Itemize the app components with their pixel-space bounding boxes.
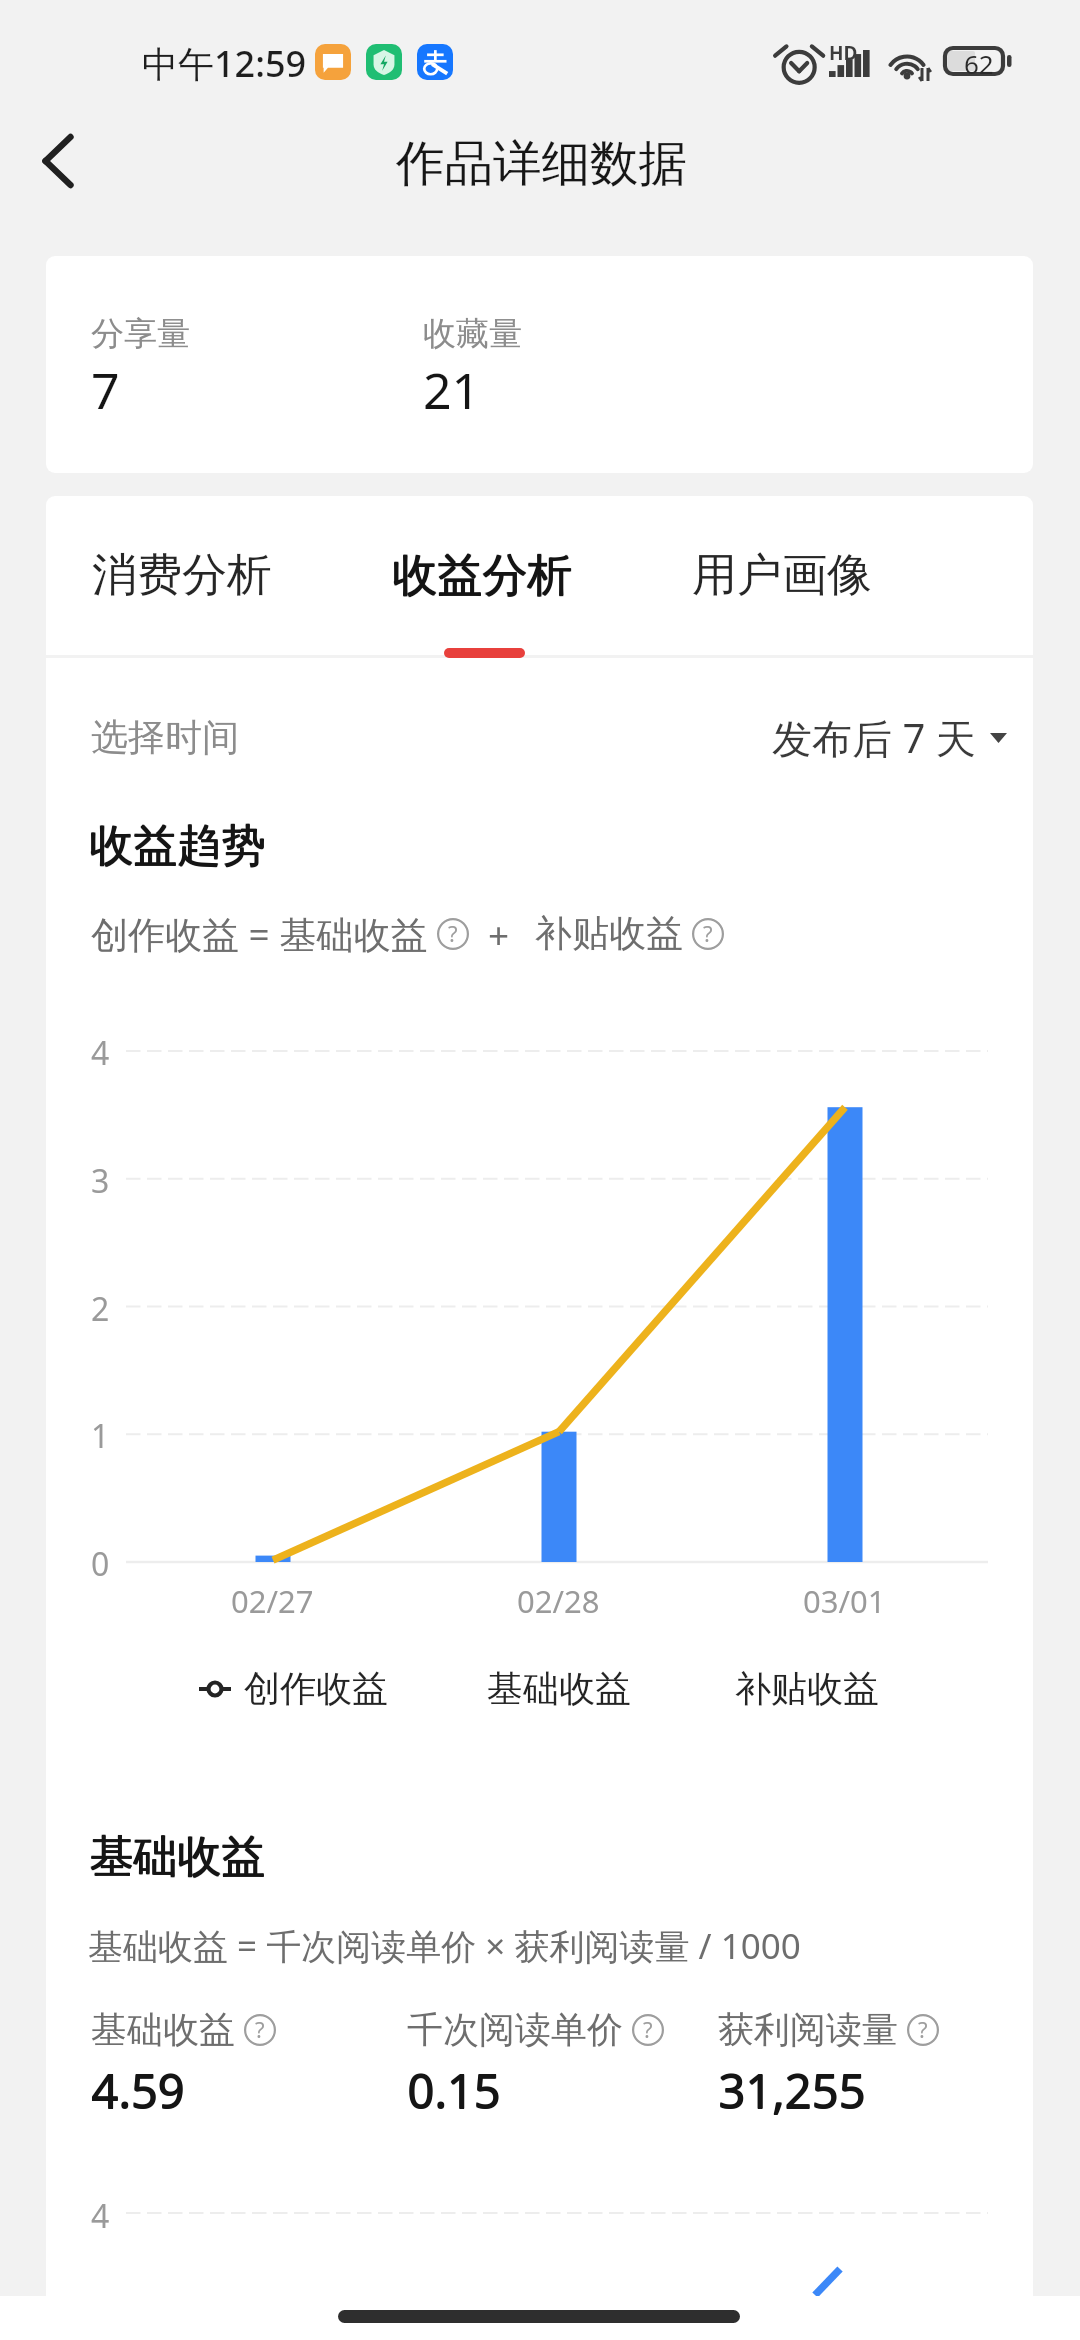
staticText: 4	[91, 2194, 110, 2238]
staticText: 31,255	[719, 2058, 867, 2122]
staticText: 收益分析	[393, 548, 573, 605]
staticText: ?	[703, 918, 713, 948]
button[interactable]: 创作收益	[199, 1666, 388, 1711]
staticText: 补贴收益	[535, 910, 683, 957]
staticText: 0	[91, 1542, 110, 1586]
staticText: 选择时间	[91, 714, 239, 761]
button[interactable]: 用户画像	[662, 511, 902, 640]
staticText: 1	[91, 1414, 110, 1458]
button[interactable]: Help	[692, 918, 724, 950]
staticText: 4.59	[91, 2059, 185, 2123]
staticText: 收益趋势	[90, 818, 266, 873]
staticText: 2	[91, 1287, 110, 1331]
staticText: 4.59	[92, 2058, 186, 2122]
staticText: 21	[423, 356, 481, 424]
staticText: 基础收益	[91, 2007, 235, 2052]
staticText: +	[488, 909, 510, 959]
staticText: 基础收益 = 千次阅读单价 × 获利阅读量 / 1000	[88, 1922, 801, 1970]
staticText: 千次阅读单价	[407, 2007, 623, 2052]
button[interactable]: 发布后 7 天	[772, 710, 1007, 765]
staticText: 分享量	[91, 313, 190, 355]
staticText: 62	[964, 46, 994, 76]
staticText: 收益趋势	[89, 819, 265, 874]
button[interactable]: 消费分析	[62, 511, 302, 640]
staticText: 收益趋势	[90, 819, 266, 874]
staticText: 3	[91, 1159, 110, 1203]
staticText: 消费分析	[92, 547, 272, 604]
staticText: 0.15	[408, 2059, 502, 2123]
staticText: 02/27	[231, 1580, 314, 1622]
staticText: 4.59	[91, 2058, 185, 2122]
staticText: 创作收益 = 基础收益	[91, 908, 428, 959]
staticText: 收益趋势	[89, 818, 265, 873]
staticText: 31,255	[718, 2058, 866, 2122]
staticText: HD	[829, 40, 858, 66]
staticText: ?	[918, 2014, 928, 2044]
staticText: ?	[255, 2014, 265, 2044]
staticText: 0.15	[407, 2059, 501, 2123]
staticText: 0.15	[407, 2058, 501, 2122]
staticText: 03/01	[803, 1580, 886, 1622]
staticText: 收益分析	[392, 548, 572, 605]
staticText: 02/28	[517, 1580, 600, 1622]
button[interactable]: Back	[5, 108, 111, 214]
staticText: 作品详细数据	[396, 133, 687, 194]
staticText: 中午12:59	[142, 39, 307, 88]
staticText: 31,255	[719, 2059, 867, 2123]
button[interactable]: 基础收益	[487, 1666, 631, 1711]
staticText: 基础收益	[89, 1830, 265, 1885]
staticText: 4	[91, 1031, 110, 1075]
staticText: 0.15	[408, 2058, 502, 2122]
staticText: 创作收益	[244, 1666, 388, 1711]
staticText: 4.59	[92, 2059, 186, 2123]
button[interactable]: 补贴收益	[735, 1666, 879, 1711]
button[interactable]: 收益分析	[362, 511, 602, 640]
staticText: ?	[448, 918, 458, 948]
staticText: 收益分析	[393, 547, 573, 604]
staticText: 31,255	[718, 2059, 866, 2123]
staticText: 补贴收益	[735, 1666, 879, 1711]
staticText: 基础收益	[487, 1666, 631, 1711]
staticText: 基础收益	[90, 1829, 266, 1884]
staticText: ?	[643, 2014, 653, 2044]
button[interactable]: Help	[244, 2014, 276, 2046]
button[interactable]: Help	[437, 918, 469, 950]
staticText: 7	[91, 356, 120, 424]
staticText: 用户画像	[692, 547, 872, 604]
staticText: 基础收益	[90, 1830, 266, 1885]
staticText: 收藏量	[423, 313, 522, 355]
button[interactable]: Help	[907, 2014, 939, 2046]
staticText: 获利阅读量	[718, 2007, 898, 2052]
staticText: 发布后 7 天	[772, 710, 976, 765]
staticText: 基础收益	[89, 1829, 265, 1884]
button[interactable]: Help	[632, 2014, 664, 2046]
staticText: 收益分析	[392, 547, 572, 604]
